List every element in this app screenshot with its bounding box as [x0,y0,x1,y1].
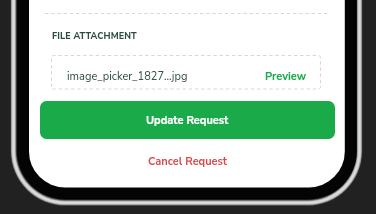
staticText: FILE ATTACHMENT [52,30,137,42]
button[interactable]: Cancel Request [40,143,335,179]
button[interactable]: image_picker_1827...jpg [51,55,321,89]
staticText: image_picker_1827...jpg [67,69,188,84]
button[interactable]: Preview [258,57,314,87]
staticText: Cancel Request [148,154,228,169]
button[interactable]: Update Request [40,101,335,139]
staticText: Preview [265,69,307,84]
staticText: Update Request [146,113,229,128]
